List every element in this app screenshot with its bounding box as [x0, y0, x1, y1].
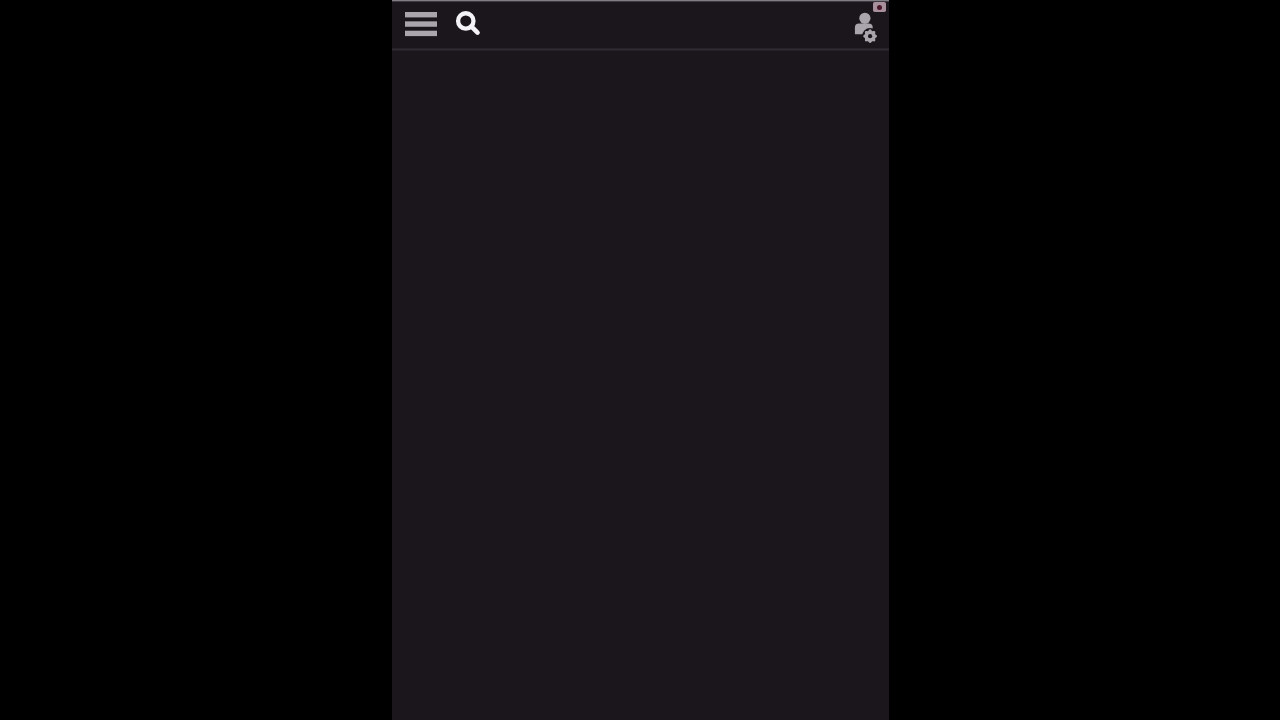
button[interactable]: Open navigation menu — [398, 2, 443, 47]
button[interactable]: Account settings — [843, 4, 887, 48]
button[interactable]: Notifications — [873, 2, 886, 12]
button[interactable]: Search — [448, 2, 490, 47]
